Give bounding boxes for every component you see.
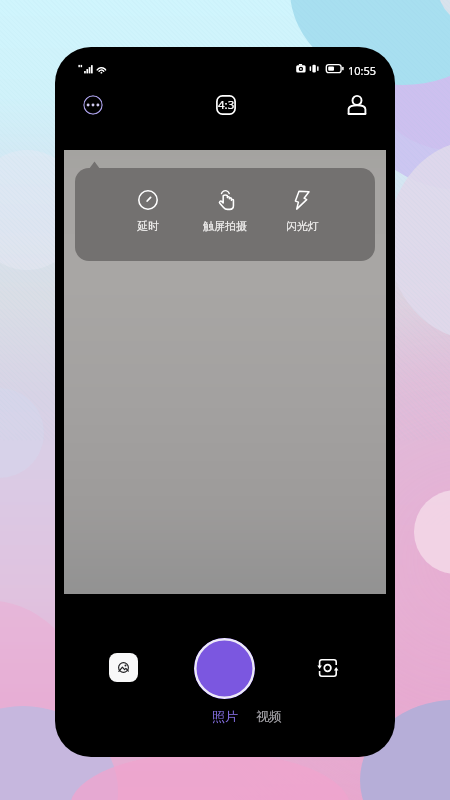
button[interactable]: 闪光灯 [266, 189, 338, 233]
staticText: 延时 [137, 219, 159, 233]
staticText: 照片 [212, 708, 238, 724]
button[interactable]: 照片 [208, 705, 242, 727]
button[interactable]: More options [83, 95, 103, 115]
button[interactable]: Gallery [109, 653, 138, 682]
staticText: 10:55 [348, 63, 377, 78]
button[interactable]: Profile [345, 93, 369, 117]
button[interactable]: Take photo [194, 638, 255, 699]
button[interactable]: 视频 [252, 705, 286, 727]
staticText: 视频 [256, 708, 282, 724]
button[interactable]: 延时 [112, 189, 184, 233]
staticText: 闪光灯 [286, 219, 319, 233]
button[interactable]: 触屏拍摄 [189, 189, 261, 233]
staticText: 4:3 [218, 97, 235, 113]
button[interactable]: Aspect ratio 4 by 3 [216, 95, 236, 115]
staticText: 触屏拍摄 [203, 219, 247, 233]
button[interactable]: Switch camera [315, 655, 341, 681]
